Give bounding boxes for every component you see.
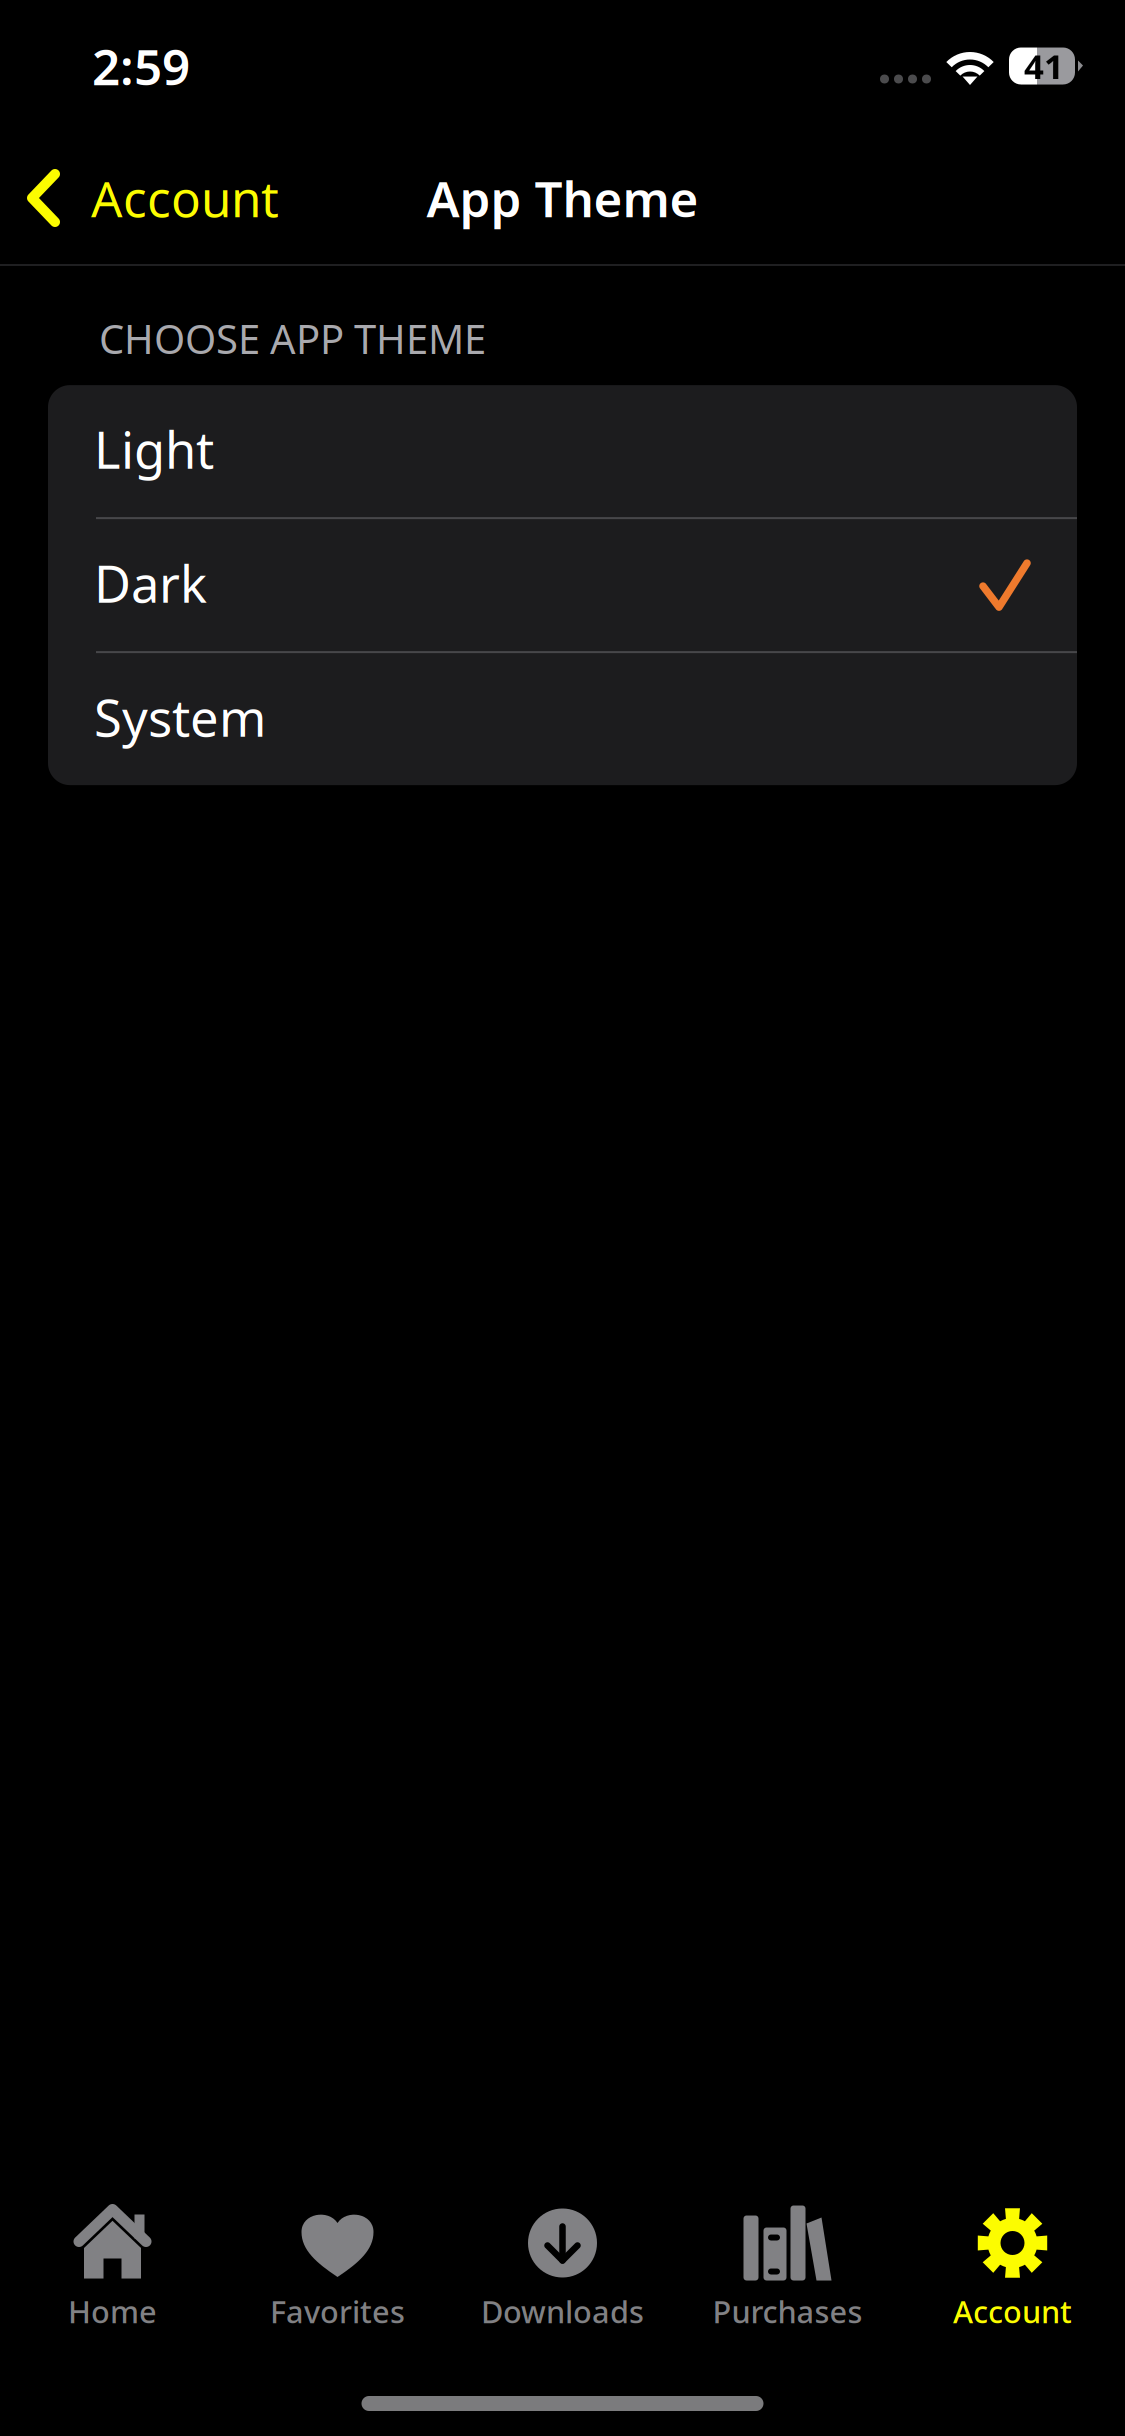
staticText: Account	[91, 165, 279, 231]
staticText: Account	[953, 2291, 1072, 2332]
staticText: Favorites	[270, 2291, 405, 2332]
button[interactable]: Downloads	[450, 2185, 675, 2332]
staticText: 2:59	[92, 33, 190, 99]
button[interactable]: Light	[48, 385, 1077, 517]
button[interactable]: Home	[0, 2185, 225, 2332]
staticText: Home	[68, 2291, 157, 2332]
staticText: Downloads	[481, 2291, 644, 2332]
button[interactable]: Account	[900, 2185, 1125, 2332]
button[interactable]: Purchases	[675, 2185, 900, 2332]
button[interactable]: Favorites	[225, 2185, 450, 2332]
staticText: 41	[1024, 43, 1064, 89]
staticText: CHOOSE APP THEME	[99, 312, 486, 365]
button[interactable]: Dark	[48, 519, 1077, 651]
staticText: App Theme	[426, 165, 698, 231]
staticText: Purchases	[712, 2291, 862, 2332]
staticText: Dark	[94, 549, 207, 617]
button[interactable]: Account	[0, 132, 303, 264]
staticText: System	[94, 683, 266, 751]
staticText: Light	[94, 415, 214, 483]
button[interactable]: System	[48, 653, 1077, 785]
